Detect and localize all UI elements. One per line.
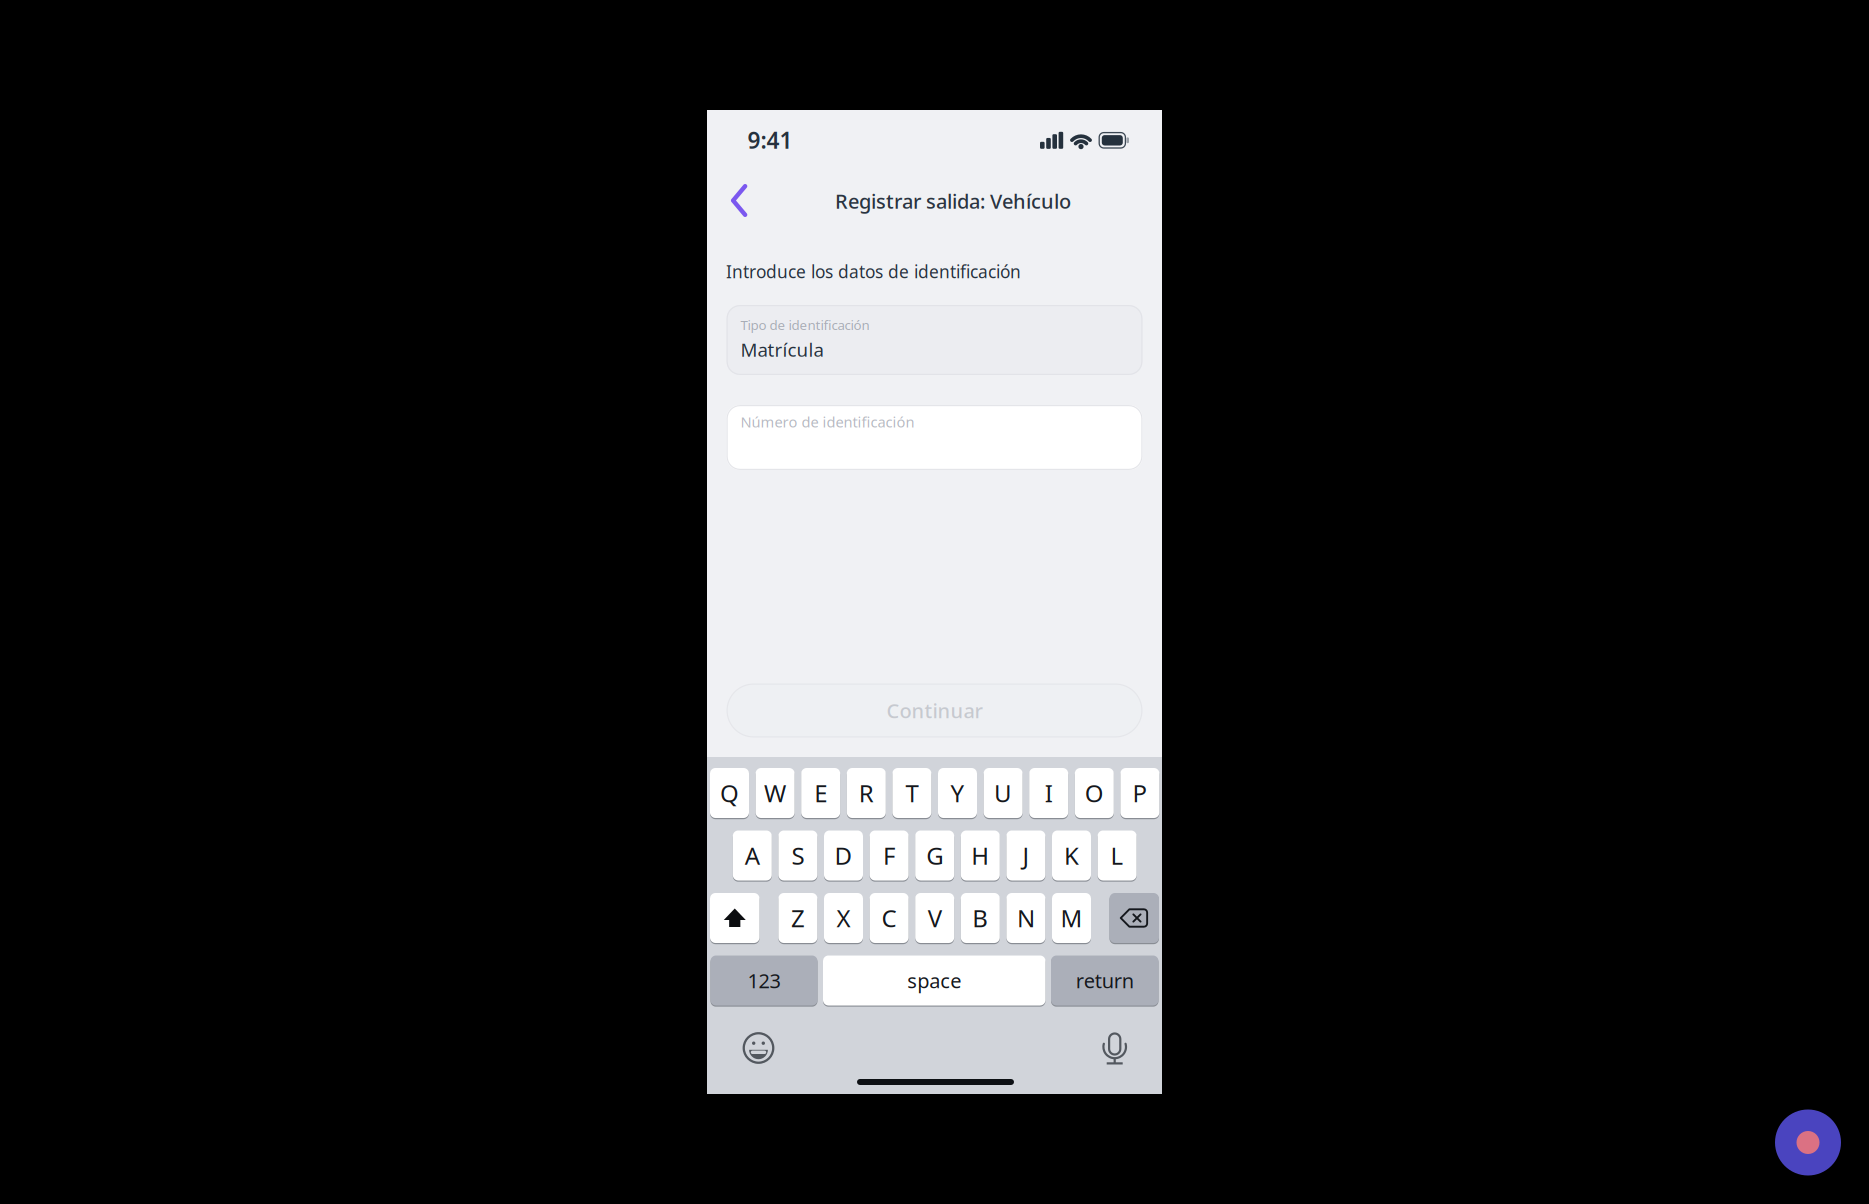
- button[interactable]: Record: [1775, 1109, 1841, 1175]
- button[interactable]: L: [1098, 829, 1137, 881]
- staticText: Matrícula: [740, 337, 823, 362]
- button[interactable]: D: [824, 829, 863, 881]
- staticText: L: [1111, 840, 1124, 871]
- staticText: A: [745, 840, 760, 871]
- button[interactable]: Shift: [710, 892, 759, 944]
- staticText: V: [928, 902, 942, 934]
- staticText: Q: [720, 777, 739, 809]
- staticText: O: [1085, 777, 1104, 809]
- staticText: J: [1022, 840, 1029, 871]
- staticText: Continuar: [886, 697, 982, 724]
- staticText: M: [1060, 902, 1082, 934]
- staticText: Y: [950, 777, 964, 809]
- staticText: Tipo de identificación: [740, 316, 869, 334]
- button[interactable]: Número de identificación: [726, 405, 1142, 470]
- button[interactable]: 123: [710, 954, 817, 1006]
- staticText: G: [926, 840, 943, 871]
- button[interactable]: return: [1051, 954, 1158, 1006]
- staticText: T: [905, 777, 918, 809]
- button[interactable]: Continuar: [726, 683, 1142, 737]
- staticText: 9:41: [747, 125, 792, 155]
- button[interactable]: Q: [710, 767, 749, 819]
- button[interactable]: C: [870, 892, 909, 944]
- staticText: P: [1132, 777, 1147, 809]
- staticText: I: [1045, 777, 1053, 809]
- button[interactable]: B: [961, 892, 1000, 944]
- staticText: S: [791, 840, 804, 871]
- staticText: Registrar salida: Vehículo: [835, 188, 1071, 214]
- button[interactable]: O: [1075, 767, 1114, 819]
- button[interactable]: S: [778, 829, 817, 881]
- button[interactable]: U: [984, 767, 1023, 819]
- button[interactable]: H: [961, 829, 1000, 881]
- button[interactable]: Z: [778, 892, 817, 944]
- button[interactable]: X: [824, 892, 863, 944]
- button[interactable]: R: [847, 767, 886, 819]
- button[interactable]: F: [870, 829, 909, 881]
- button[interactable]: Y: [938, 767, 977, 819]
- button[interactable]: Tipo de identificación: [726, 305, 1142, 375]
- staticText: B: [972, 902, 988, 934]
- button[interactable]: M: [1052, 892, 1091, 944]
- staticText: 123: [747, 967, 780, 994]
- staticText: Número de identificación: [740, 412, 914, 431]
- staticText: D: [834, 840, 852, 871]
- staticText: X: [836, 902, 850, 934]
- button[interactable]: J: [1006, 829, 1045, 881]
- staticText: K: [1064, 840, 1079, 871]
- button[interactable]: N: [1006, 892, 1045, 944]
- button[interactable]: Dictate: [1099, 1031, 1131, 1064]
- staticText: W: [764, 777, 786, 809]
- button[interactable]: A: [733, 829, 772, 881]
- button[interactable]: space: [823, 954, 1045, 1006]
- staticText: Z: [791, 902, 805, 934]
- button[interactable]: P: [1120, 767, 1159, 819]
- staticText: F: [883, 840, 895, 871]
- staticText: space: [907, 967, 961, 994]
- button[interactable]: T: [892, 767, 931, 819]
- staticText: E: [814, 777, 827, 809]
- button[interactable]: W: [756, 767, 795, 819]
- button[interactable]: V: [915, 892, 954, 944]
- button[interactable]: I: [1029, 767, 1068, 819]
- staticText: N: [1017, 902, 1035, 934]
- staticText: C: [882, 902, 897, 934]
- button[interactable]: Delete: [1109, 892, 1159, 944]
- button[interactable]: G: [915, 829, 954, 881]
- button[interactable]: Back: [730, 184, 748, 217]
- button[interactable]: K: [1052, 829, 1091, 881]
- staticText: H: [971, 840, 989, 871]
- button[interactable]: E: [801, 767, 840, 819]
- button[interactable]: Emoji: [742, 1032, 774, 1064]
- staticText: U: [994, 777, 1012, 809]
- staticText: Introduce los datos de identificación: [726, 260, 1021, 283]
- staticText: return: [1076, 967, 1134, 994]
- staticText: R: [859, 777, 874, 809]
